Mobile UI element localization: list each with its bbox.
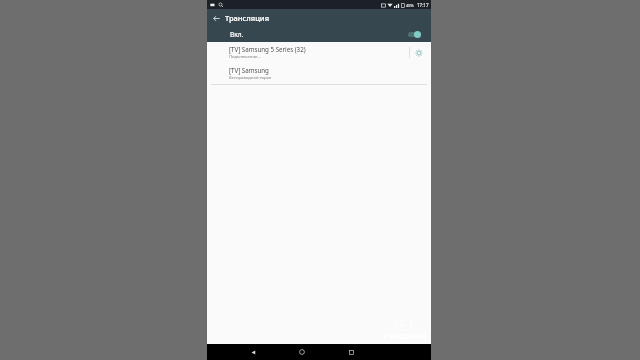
button[interactable]: Back	[245, 344, 261, 360]
button[interactable]: [TV] Samsung 5 Series (32)	[207, 42, 431, 63]
staticText: [TV] Samsung	[229, 66, 269, 74]
staticText: Вкл.	[230, 30, 244, 39]
staticText: Трансляция	[225, 13, 270, 23]
staticText: 17:17	[417, 2, 429, 8]
button[interactable]: Вкл.	[207, 27, 431, 42]
button[interactable]: Back	[207, 9, 225, 27]
staticText: Подключение...	[229, 54, 261, 60]
staticText: 45%	[406, 3, 414, 8]
button[interactable]: [TV] Samsung	[207, 63, 431, 84]
staticText: Беспроводной экран	[229, 75, 272, 81]
button[interactable]: Home	[294, 344, 310, 360]
staticText: [TV] Samsung 5 Series (32)	[229, 45, 306, 53]
button[interactable]: Recent apps	[343, 344, 359, 360]
button[interactable]: Settings	[413, 47, 425, 59]
